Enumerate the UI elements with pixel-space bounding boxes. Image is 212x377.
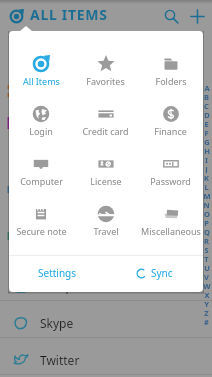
staticText: K xyxy=(204,173,209,182)
staticText: M xyxy=(203,191,211,200)
staticText: N xyxy=(203,200,210,209)
button[interactable]: Favorites xyxy=(73,31,138,98)
staticText: Credit card xyxy=(82,125,129,137)
button[interactable]: License xyxy=(73,148,138,198)
button[interactable]: Travel xyxy=(73,198,138,248)
staticText: P xyxy=(204,218,209,227)
button[interactable]: Passport xyxy=(0,264,212,301)
staticText: G xyxy=(204,137,210,146)
button[interactable]: Twitter xyxy=(0,338,212,375)
staticText: Z xyxy=(204,308,209,317)
staticText: R xyxy=(204,236,209,245)
button[interactable]: Skype xyxy=(0,301,212,338)
staticText: V xyxy=(204,272,209,281)
staticText: Settings xyxy=(38,266,77,280)
staticText: A xyxy=(204,83,210,92)
button[interactable]: Add xyxy=(184,3,210,29)
button[interactable]: Finance xyxy=(138,98,203,148)
staticText: J xyxy=(205,164,208,173)
staticText: U xyxy=(204,263,210,272)
staticText: Passport xyxy=(40,278,90,294)
staticText: C xyxy=(204,101,209,110)
staticText: Password xyxy=(150,175,191,187)
staticText: # xyxy=(204,317,209,326)
staticText: Computer xyxy=(20,175,63,187)
staticText: ALL ITEMS xyxy=(30,5,108,24)
button[interactable]: Computer xyxy=(9,148,73,198)
staticText: Twitter xyxy=(40,352,80,368)
staticText: F xyxy=(204,128,209,137)
staticText: T xyxy=(204,254,209,263)
staticText: Login xyxy=(29,125,53,137)
staticText: Finance xyxy=(154,125,187,137)
staticText: Q xyxy=(204,227,210,236)
staticText: I xyxy=(205,155,208,164)
staticText: H xyxy=(204,146,210,155)
staticText: Y xyxy=(204,299,209,308)
button[interactable]: Search xyxy=(158,3,184,29)
button[interactable]: Sync xyxy=(106,256,203,290)
staticText: E xyxy=(204,119,209,128)
button[interactable]: Login xyxy=(9,98,73,148)
staticText: Favorites xyxy=(86,75,125,87)
button[interactable]: Secure note xyxy=(9,198,73,248)
staticText: Skype xyxy=(40,315,74,331)
staticText: Secure note xyxy=(16,225,67,237)
staticText: X xyxy=(204,290,210,299)
staticText: W xyxy=(203,281,211,290)
button[interactable]: Folders xyxy=(138,31,203,98)
button[interactable]: All items xyxy=(6,6,26,26)
staticText: Travel xyxy=(93,225,119,237)
button[interactable]: All Items xyxy=(9,31,73,98)
staticText: B xyxy=(204,92,209,101)
staticText: All Items xyxy=(23,75,60,87)
staticText: S xyxy=(204,245,209,254)
staticText: Sync xyxy=(151,266,173,280)
button[interactable]: Miscellaneous xyxy=(138,198,203,248)
staticText: Folders xyxy=(155,75,187,87)
button[interactable]: Credit card xyxy=(73,98,138,148)
staticText: D xyxy=(204,110,210,119)
button[interactable]: Settings xyxy=(9,256,106,290)
staticText: License xyxy=(90,175,122,187)
button[interactable]: Password xyxy=(138,148,203,198)
staticText: L xyxy=(204,182,209,191)
staticText: Miscellaneous xyxy=(141,225,201,237)
staticText: O xyxy=(204,209,210,218)
